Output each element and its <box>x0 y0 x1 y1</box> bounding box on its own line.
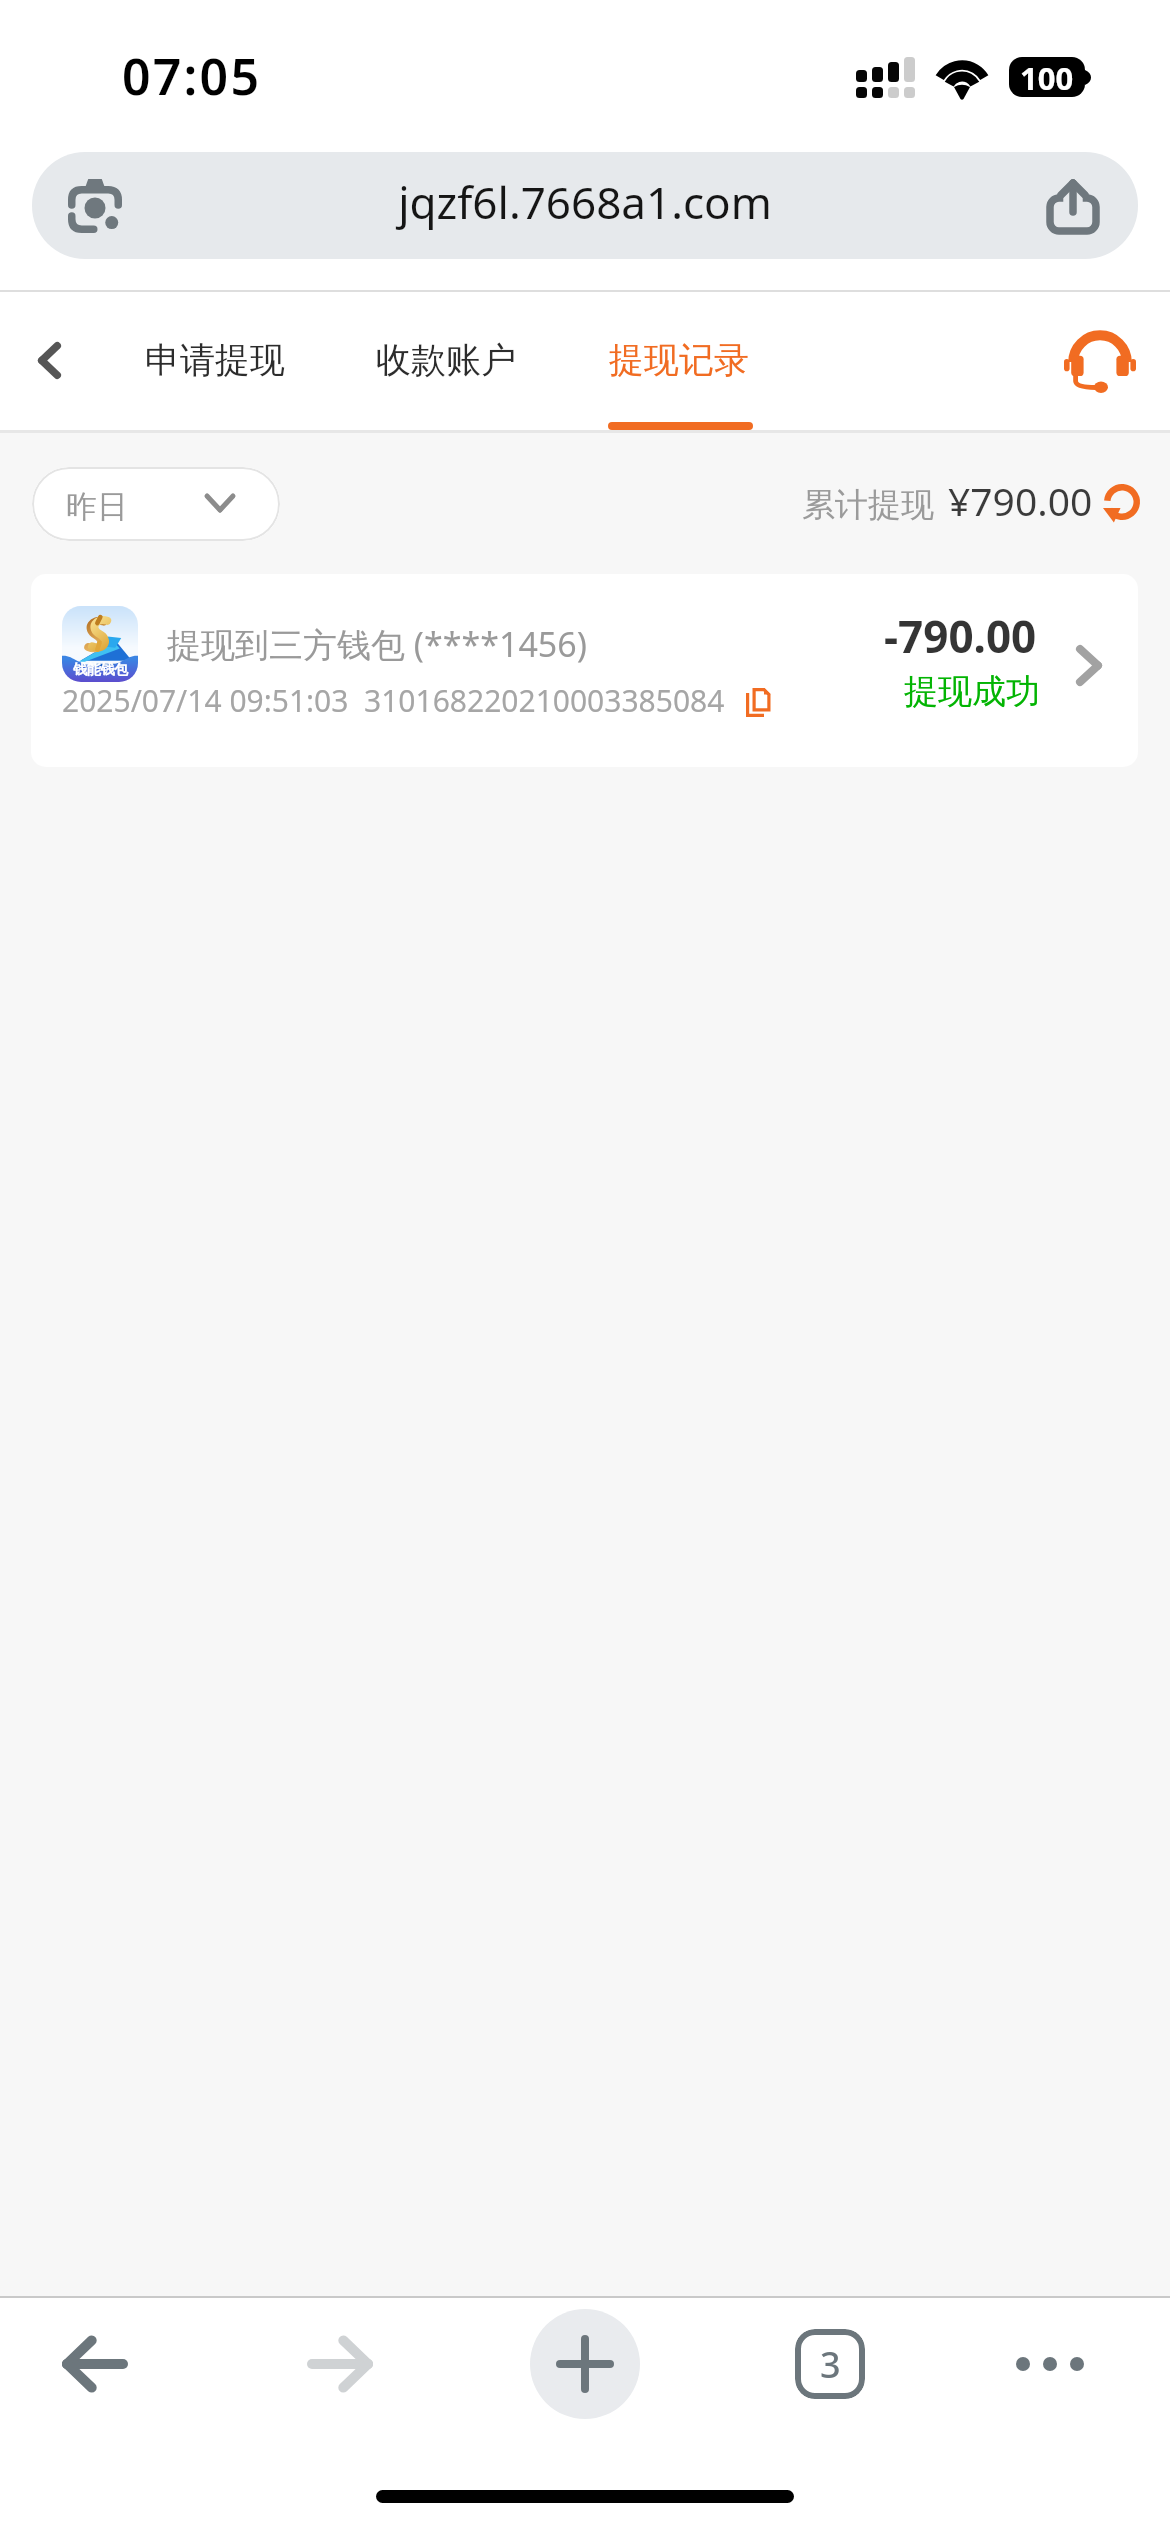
button[interactable]: More options <box>1005 2319 1095 2409</box>
button[interactable]: Customer service <box>1053 312 1147 406</box>
staticText: 提现成功 <box>904 670 1040 713</box>
staticText: 提现到三方钱包 (****1456) <box>167 621 587 667</box>
button[interactable]: 昨日 <box>32 467 280 541</box>
button[interactable]: 钱能钱包 <box>31 574 1138 767</box>
staticText: 2025/07/14 09:51:03 31016822021000338508… <box>62 680 725 721</box>
staticText: -790.00 <box>884 606 1037 666</box>
button[interactable]: Refresh <box>1098 478 1146 526</box>
staticText: 收款账户 <box>376 338 516 382</box>
button[interactable]: Back <box>10 321 88 399</box>
staticText: ¥790.00 <box>948 474 1093 527</box>
staticText: 100 <box>1020 57 1074 97</box>
staticText: 钱能钱包 <box>73 661 128 679</box>
button[interactable]: 3 <box>795 2329 865 2399</box>
button[interactable]: 收款账户 <box>376 291 516 429</box>
button[interactable]: 提现记录 <box>609 291 749 429</box>
button[interactable]: 申请提现 <box>145 291 285 429</box>
staticText: 3 <box>820 2340 841 2389</box>
button[interactable]: Forward <box>295 2319 385 2409</box>
button[interactable]: Back <box>50 2319 140 2409</box>
staticText: 昨日 <box>66 487 128 526</box>
button[interactable]: Copy <box>733 677 783 727</box>
staticText: 提现记录 <box>609 338 749 382</box>
staticText: 07:05 <box>122 42 262 110</box>
button[interactable]: Search with camera <box>32 152 1138 259</box>
other: Search with camera <box>68 178 122 233</box>
other: Share <box>1046 178 1100 234</box>
staticText: 申请提现 <box>145 338 285 382</box>
button[interactable]: New tab <box>530 2309 640 2419</box>
staticText: jqzf6l.7668a1.com <box>32 172 1138 232</box>
staticText: 累计提现 <box>802 484 934 526</box>
